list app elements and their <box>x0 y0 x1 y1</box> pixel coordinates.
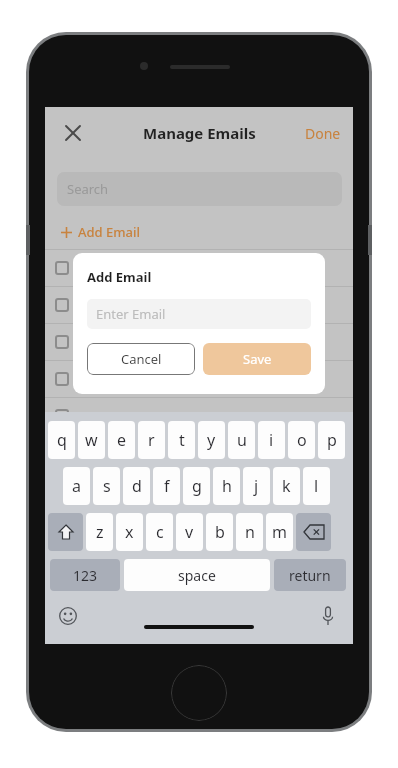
staticText: o <box>297 429 307 451</box>
button[interactable]: Add Email <box>57 219 145 245</box>
staticText: k <box>282 475 291 497</box>
staticText: m <box>272 521 287 543</box>
button[interactable]: j <box>243 467 270 505</box>
button[interactable]: Search <box>57 172 342 206</box>
button[interactable]: e <box>108 421 135 459</box>
button[interactable]: c <box>146 513 173 551</box>
staticText: b <box>215 521 225 543</box>
button[interactable]: b <box>206 513 233 551</box>
staticText: Done <box>305 124 341 143</box>
staticText: Add Email <box>87 268 152 286</box>
button[interactable]: a <box>63 467 90 505</box>
button[interactable]: Save <box>203 343 311 375</box>
staticText: w <box>85 429 98 451</box>
button[interactable]: t <box>168 421 195 459</box>
button[interactable]: u <box>228 421 255 459</box>
button[interactable]: p <box>318 421 345 459</box>
button[interactable]: r <box>138 421 165 459</box>
button[interactable]: i <box>258 421 285 459</box>
button[interactable] <box>45 287 353 323</box>
button[interactable]: l <box>303 467 330 505</box>
staticText: q <box>57 429 67 451</box>
staticText: h <box>222 475 232 497</box>
button[interactable]: Shift <box>48 513 83 551</box>
button[interactable]: v <box>176 513 203 551</box>
button[interactable]: x <box>116 513 143 551</box>
staticText: y <box>207 429 216 451</box>
staticText: a <box>72 475 81 497</box>
staticText: d <box>132 475 142 497</box>
staticText: c <box>156 521 164 543</box>
button[interactable]: d <box>123 467 150 505</box>
button[interactable]: Home <box>171 665 227 721</box>
staticText: u <box>237 429 247 451</box>
button[interactable]: h <box>213 467 240 505</box>
button[interactable]: o <box>288 421 315 459</box>
staticText: space <box>178 566 216 585</box>
button[interactable]: y <box>198 421 225 459</box>
staticText: x <box>125 521 134 543</box>
button[interactable]: Enter Email <box>87 299 311 329</box>
button[interactable]: m <box>266 513 293 551</box>
staticText: Search <box>67 180 109 198</box>
staticText: t <box>179 429 185 451</box>
staticText: s <box>103 475 111 497</box>
staticText: n <box>245 521 255 543</box>
button[interactable]: Close <box>55 115 91 151</box>
staticText: 123 <box>73 566 98 585</box>
button[interactable]: q <box>48 421 75 459</box>
staticText: r <box>148 429 155 451</box>
staticText: e <box>117 429 127 451</box>
button[interactable]: Cancel <box>87 343 195 375</box>
staticText: Enter Email <box>96 305 166 323</box>
button[interactable]: space <box>124 559 270 591</box>
staticText: Add Email <box>78 223 141 241</box>
staticText: f <box>164 475 170 497</box>
button[interactable]: w <box>78 421 105 459</box>
button[interactable]: 123 <box>50 559 120 591</box>
staticText: Manage Emails <box>143 123 256 143</box>
staticText: Save <box>243 350 272 368</box>
button[interactable]: return <box>274 559 346 591</box>
button[interactable]: Emoji <box>55 603 81 629</box>
button[interactable]: n <box>236 513 263 551</box>
staticText: p <box>327 429 337 451</box>
button[interactable]: g <box>183 467 210 505</box>
button[interactable]: Backspace <box>296 513 331 551</box>
staticText: i <box>269 429 274 451</box>
staticText: g <box>192 475 202 497</box>
button[interactable]: k <box>273 467 300 505</box>
staticText: v <box>185 521 194 543</box>
staticText: Cancel <box>121 350 162 368</box>
button[interactable] <box>45 324 353 360</box>
button[interactable]: z <box>86 513 113 551</box>
button[interactable]: s <box>93 467 120 505</box>
button[interactable]: Voice input <box>315 603 341 629</box>
button[interactable]: Done <box>293 116 353 151</box>
staticText: j <box>254 475 259 497</box>
button[interactable] <box>45 398 353 434</box>
button[interactable]: f <box>153 467 180 505</box>
button[interactable] <box>45 361 353 397</box>
button[interactable] <box>45 250 353 286</box>
staticText: z <box>96 521 104 543</box>
staticText: return <box>289 566 331 585</box>
staticText: l <box>314 475 319 497</box>
